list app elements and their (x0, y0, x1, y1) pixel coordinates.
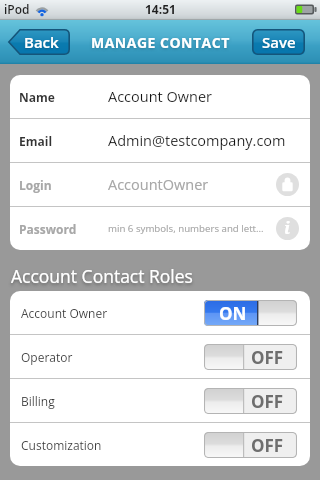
staticText: i (284, 216, 291, 239)
staticText: AccountOwner (108, 175, 276, 195)
staticText: Save (262, 32, 296, 52)
staticText: Password (19, 221, 108, 237)
staticText: 14:51 (145, 1, 176, 17)
staticText: OFF (251, 390, 284, 413)
staticText: Back (24, 32, 59, 52)
button[interactable]: Email (10, 119, 310, 162)
staticText: ON (219, 302, 247, 325)
button[interactable]: Password (10, 207, 310, 250)
staticText: OFF (251, 346, 284, 369)
staticText: Login (19, 177, 108, 193)
staticText: iPod (4, 1, 30, 17)
staticText: Admin@testcompany.com (108, 131, 299, 151)
button[interactable]: Operator (10, 335, 310, 378)
staticText: Account Owner (21, 305, 204, 321)
staticText: Operator (21, 349, 204, 365)
button[interactable]: Toggle on (204, 300, 297, 326)
staticText: Name (19, 89, 108, 105)
staticText: Billing (21, 393, 204, 409)
button[interactable]: Save (252, 29, 305, 55)
staticText: Customization (21, 437, 204, 453)
button[interactable]: Toggle off (204, 344, 297, 370)
staticText: min 6 symbols, numbers and lett… (108, 222, 276, 235)
staticText: Account Contact Roles (11, 264, 193, 288)
staticText: OFF (251, 434, 284, 457)
staticText: MANAGE CONTACT (91, 33, 230, 52)
button[interactable]: Back (8, 29, 70, 55)
button[interactable]: Customization (10, 423, 310, 466)
button[interactable]: Toggle off (204, 388, 297, 414)
staticText: Account Owner (108, 87, 299, 107)
button[interactable]: Login (10, 163, 310, 206)
button[interactable]: Account Owner (10, 291, 310, 334)
button[interactable]: Toggle off (204, 432, 297, 458)
button[interactable]: Billing (10, 379, 310, 422)
button[interactable]: Name (10, 75, 310, 118)
staticText: Email (19, 133, 108, 149)
